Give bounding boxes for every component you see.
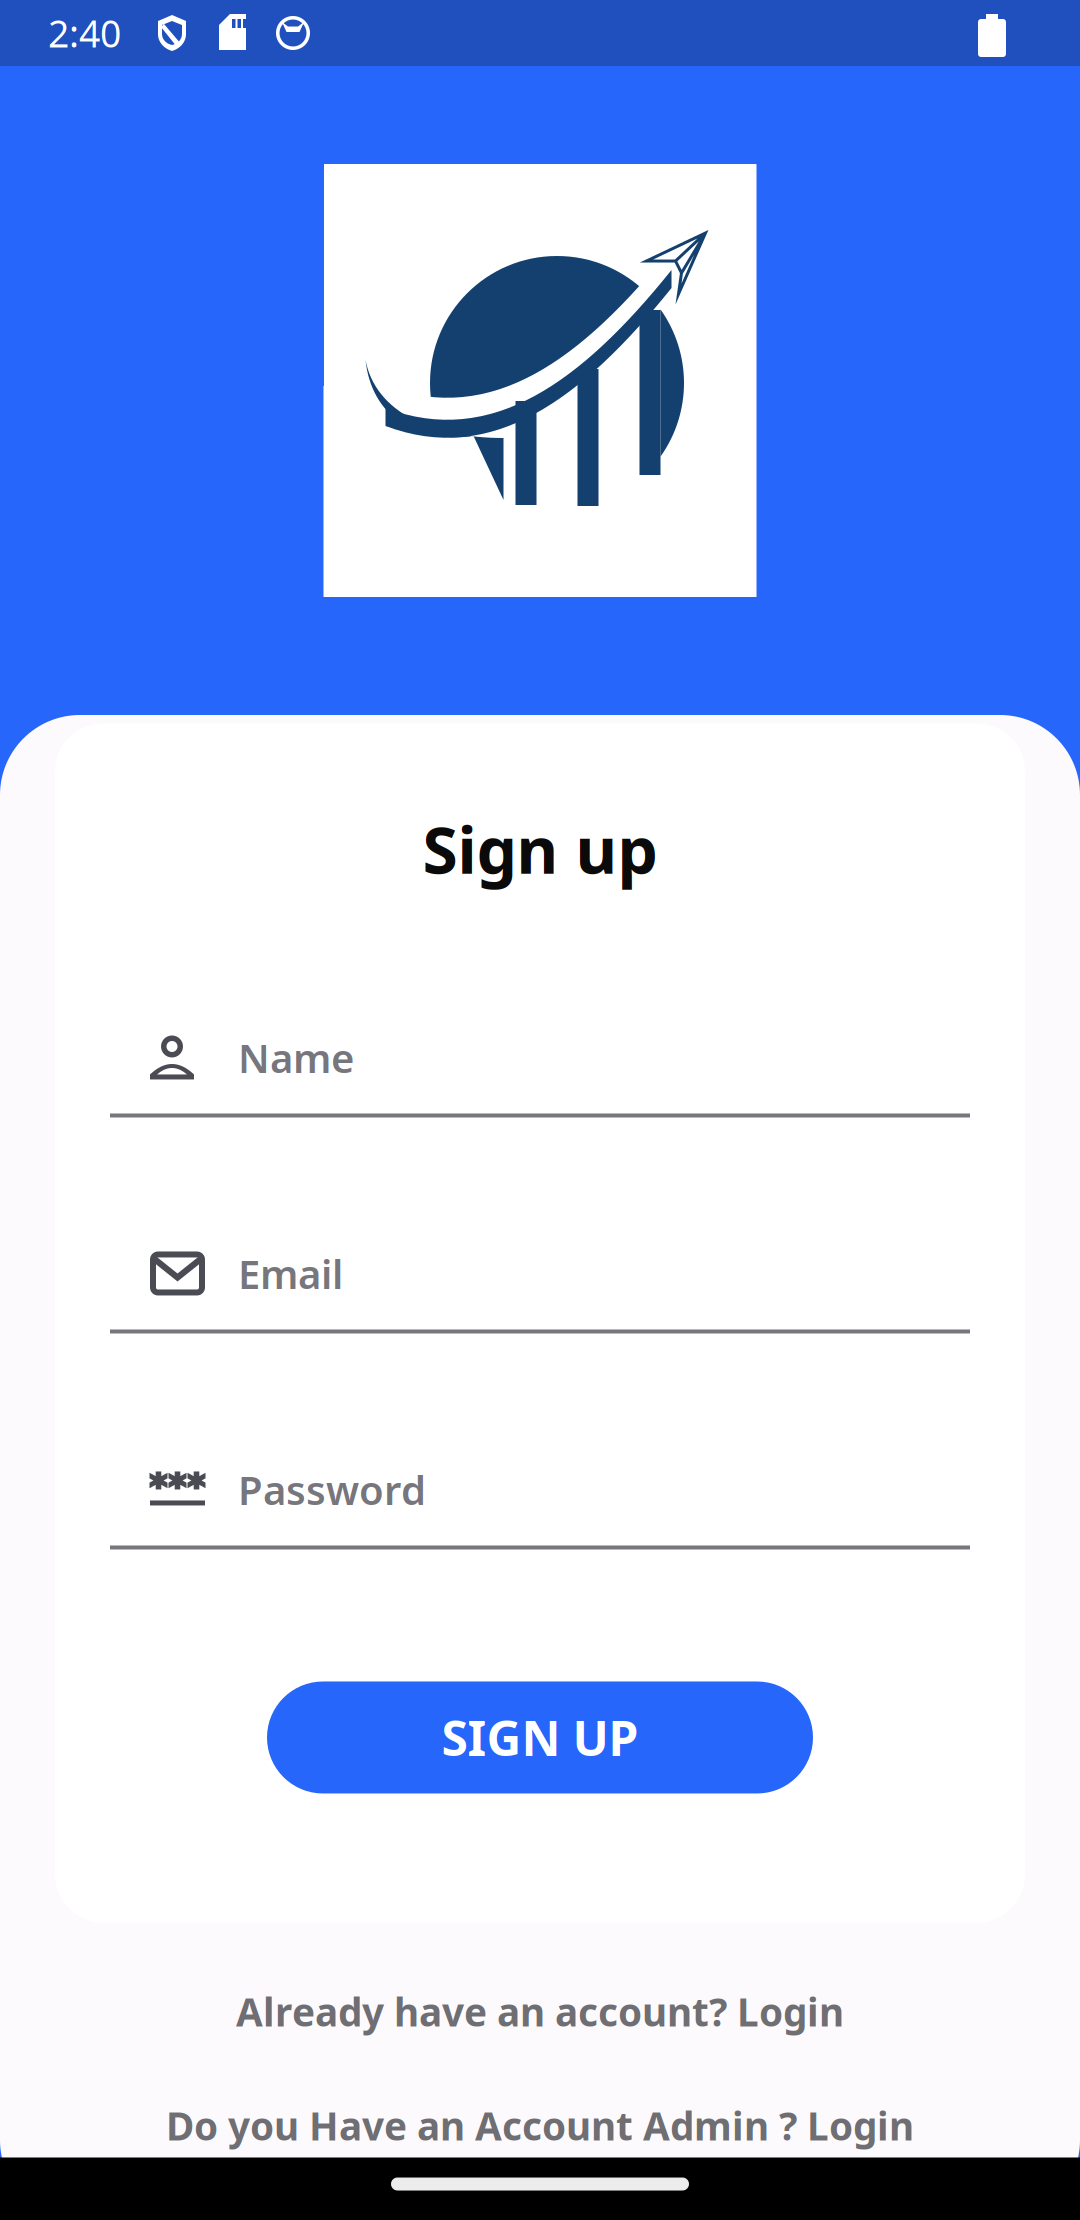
staticText: Name <box>238 1031 354 1084</box>
staticText: Email <box>238 1247 343 1300</box>
staticText: Do you Have an Account Admin ? Login <box>166 2100 914 2151</box>
button[interactable]: SIGN UP <box>267 1681 813 1793</box>
staticText: Sign up <box>422 806 657 891</box>
staticText: Already have an account? Login <box>236 1986 844 2037</box>
staticText: 2:40 <box>48 8 121 58</box>
staticText: Password <box>238 1463 426 1516</box>
button[interactable]: Do you Have an Account Admin ? Login <box>0 2093 1080 2157</box>
staticText: SIGN UP <box>441 1706 638 1769</box>
button[interactable]: Already have an account? Login <box>0 1979 1080 2043</box>
